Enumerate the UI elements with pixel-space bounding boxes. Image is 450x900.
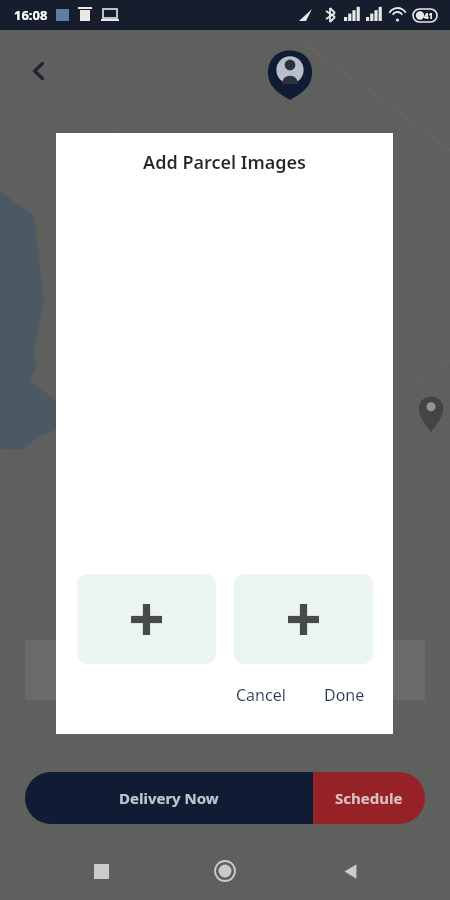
staticText: Cancel (236, 684, 286, 706)
button[interactable]: Schedule (313, 772, 425, 824)
button[interactable]: Done (318, 676, 371, 714)
staticText: 41 (424, 10, 434, 21)
staticText: Add Parcel Images (143, 150, 306, 175)
staticText: 16:08 (14, 6, 48, 24)
button[interactable]: Back (326, 847, 374, 895)
button[interactable]: Add image (77, 574, 216, 664)
button[interactable]: Back (20, 52, 58, 90)
button[interactable]: Add image (234, 574, 373, 664)
staticText: Delivery Now (119, 788, 219, 808)
staticText: Schedule (335, 788, 403, 808)
staticText: Done (324, 684, 365, 706)
button[interactable]: Delivery Now (25, 772, 313, 824)
button[interactable]: Cancel (226, 676, 296, 714)
button[interactable]: Home (201, 847, 249, 895)
button[interactable]: Recent apps (77, 847, 125, 895)
